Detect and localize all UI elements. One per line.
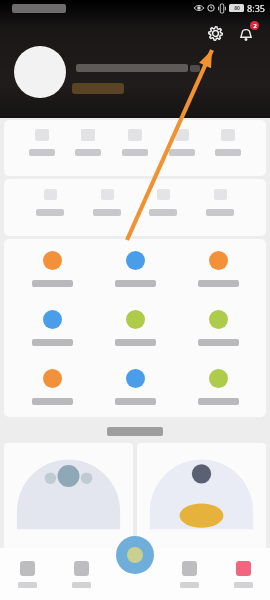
button[interactable] — [17, 310, 87, 346]
staticText: 80 — [234, 5, 240, 12]
button[interactable] — [100, 369, 170, 405]
button[interactable]: Cart — [162, 548, 216, 600]
button[interactable]: Settings — [204, 22, 226, 44]
button[interactable]: Category — [54, 548, 108, 600]
button[interactable]: Mine — [216, 548, 270, 600]
button[interactable] — [183, 310, 253, 346]
button[interactable] — [183, 369, 253, 405]
button[interactable]: Discover — [116, 536, 154, 574]
button[interactable] — [100, 310, 170, 346]
button[interactable] — [137, 443, 266, 553]
button[interactable] — [100, 251, 170, 287]
button[interactable] — [4, 443, 133, 553]
button[interactable]: Profile avatar — [14, 46, 66, 98]
button[interactable] — [183, 251, 253, 287]
button[interactable] — [17, 251, 87, 287]
staticText: 8:35 — [247, 2, 265, 14]
button[interactable]: Home — [0, 548, 54, 600]
button[interactable]: Notifications — [234, 22, 258, 46]
staticText: 2 — [253, 22, 257, 29]
button[interactable] — [17, 369, 87, 405]
